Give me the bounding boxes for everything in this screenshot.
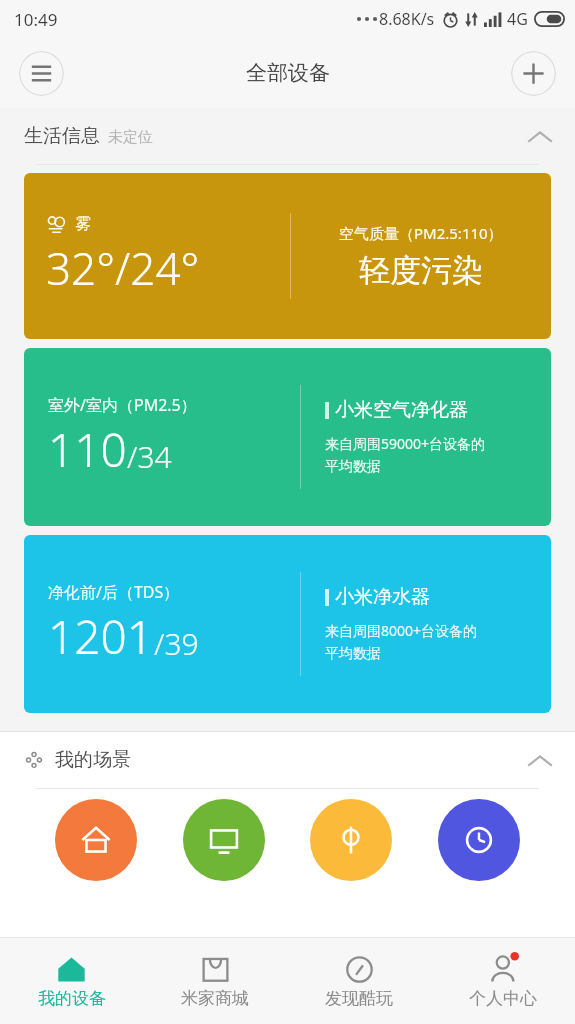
staticText: 小米空气净化器 — [335, 398, 468, 422]
button[interactable]: Add device — [511, 51, 556, 96]
staticText: 室外/室内（PM2.5） — [48, 394, 197, 416]
staticText: 8.68K/s — [379, 8, 435, 30]
staticText: 净化前/后（TDS） — [48, 581, 180, 603]
staticText: /34 — [127, 436, 172, 477]
button[interactable]: 雾 — [24, 173, 551, 339]
staticText: 个人中心 — [469, 988, 537, 1009]
staticText: 米家商城 — [181, 988, 249, 1009]
button[interactable]: 米家商城 — [143, 937, 287, 1024]
button[interactable]: Scene 1 — [55, 799, 137, 881]
staticText: 轻度污染 — [359, 251, 483, 290]
staticText: 来自周围8000+台设备的 — [325, 621, 478, 640]
staticText: 平均数据 — [325, 645, 381, 663]
staticText: 平均数据 — [325, 458, 381, 476]
button[interactable]: 净化前/后（TDS） — [24, 535, 551, 713]
staticText: 我的场景 — [55, 748, 131, 772]
staticText: /39 — [154, 623, 199, 664]
staticText: 全部设备 — [246, 60, 330, 86]
button[interactable]: Scene 3 — [310, 799, 392, 881]
staticText: 我的设备 — [38, 988, 106, 1009]
staticText: 来自周围59000+台设备的 — [325, 434, 486, 453]
staticText: 32°/24° — [46, 238, 200, 298]
button[interactable]: 生活信息 — [0, 108, 575, 165]
staticText: 发现酷玩 — [325, 988, 393, 1009]
staticText: 生活信息 — [24, 124, 100, 148]
staticText: 小米净水器 — [335, 585, 430, 609]
staticText: 4G — [507, 8, 528, 30]
button[interactable]: 发现酷玩 — [287, 937, 431, 1024]
button[interactable]: Menu — [19, 51, 64, 96]
staticText: 1201 — [48, 605, 154, 668]
button[interactable]: Scene 2 — [183, 799, 265, 881]
staticText: 未定位 — [108, 128, 153, 147]
staticText: 雾 — [75, 214, 91, 234]
button[interactable]: 我的场景 — [0, 732, 575, 789]
button[interactable]: 我的设备 — [0, 937, 143, 1024]
staticText: 110 — [48, 418, 127, 481]
staticText: 空气质量（PM2.5:110） — [339, 223, 503, 243]
button[interactable]: Scene 4 — [438, 799, 520, 881]
staticText: 10:49 — [14, 8, 58, 31]
button[interactable]: 室外/室内（PM2.5） — [24, 348, 551, 526]
button[interactable]: 个人中心 — [431, 937, 575, 1024]
